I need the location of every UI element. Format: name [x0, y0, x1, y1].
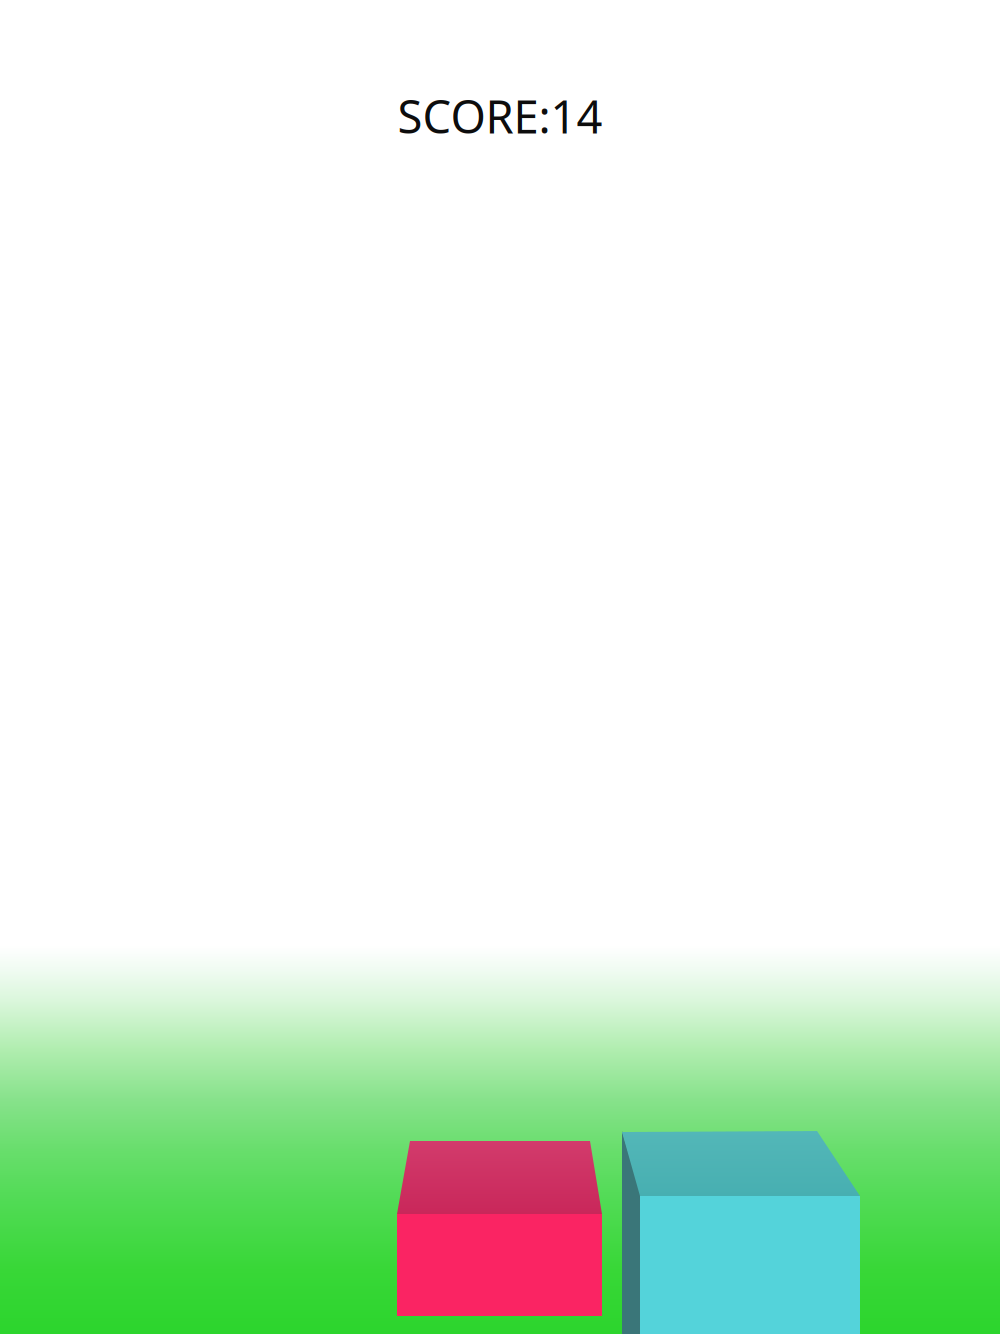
staticText: SCORE:14 [397, 86, 602, 146]
button[interactable]: Drop block [0, 0, 1000, 1334]
